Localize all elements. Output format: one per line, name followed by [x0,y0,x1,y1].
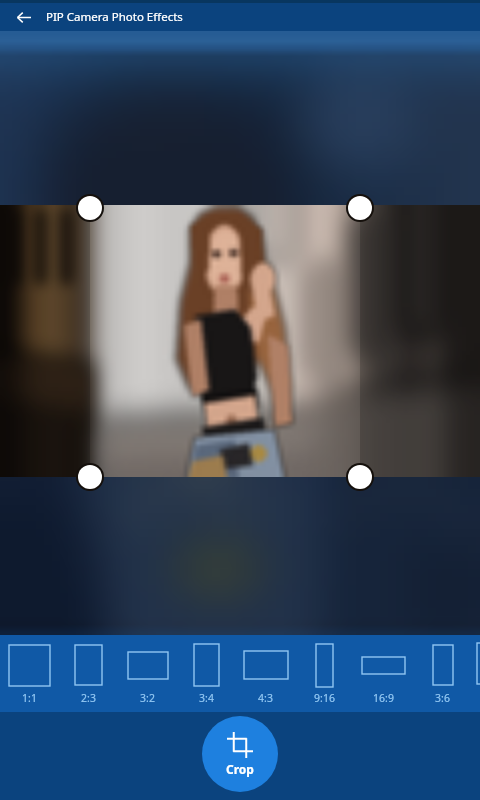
button[interactable]: Crop [202,716,278,792]
button[interactable]: 9:16 [295,635,354,712]
staticText: 3:4 [199,691,214,705]
staticText: 4:3 [258,691,273,705]
button[interactable]: Back [0,3,46,31]
staticText: 2:3 [81,691,96,705]
staticText: PIP Camera Photo Effects [46,9,183,25]
staticText: 1:1 [22,691,37,705]
button[interactable]: 3:4 [177,635,236,712]
button[interactable]: 1:1 [0,635,59,712]
staticText: 3:2 [140,691,155,705]
button[interactable]: 16:9 [354,635,413,712]
staticText: 9:16 [314,691,335,705]
staticText: Crop [226,761,254,777]
button[interactable]: 4:3 [236,635,295,712]
button[interactable]: 3:6 [413,635,472,712]
button[interactable]: 2:3 [59,635,118,712]
button[interactable]: 3:2 [118,635,177,712]
staticText: 16:9 [373,691,394,705]
staticText: 3:6 [435,691,450,705]
